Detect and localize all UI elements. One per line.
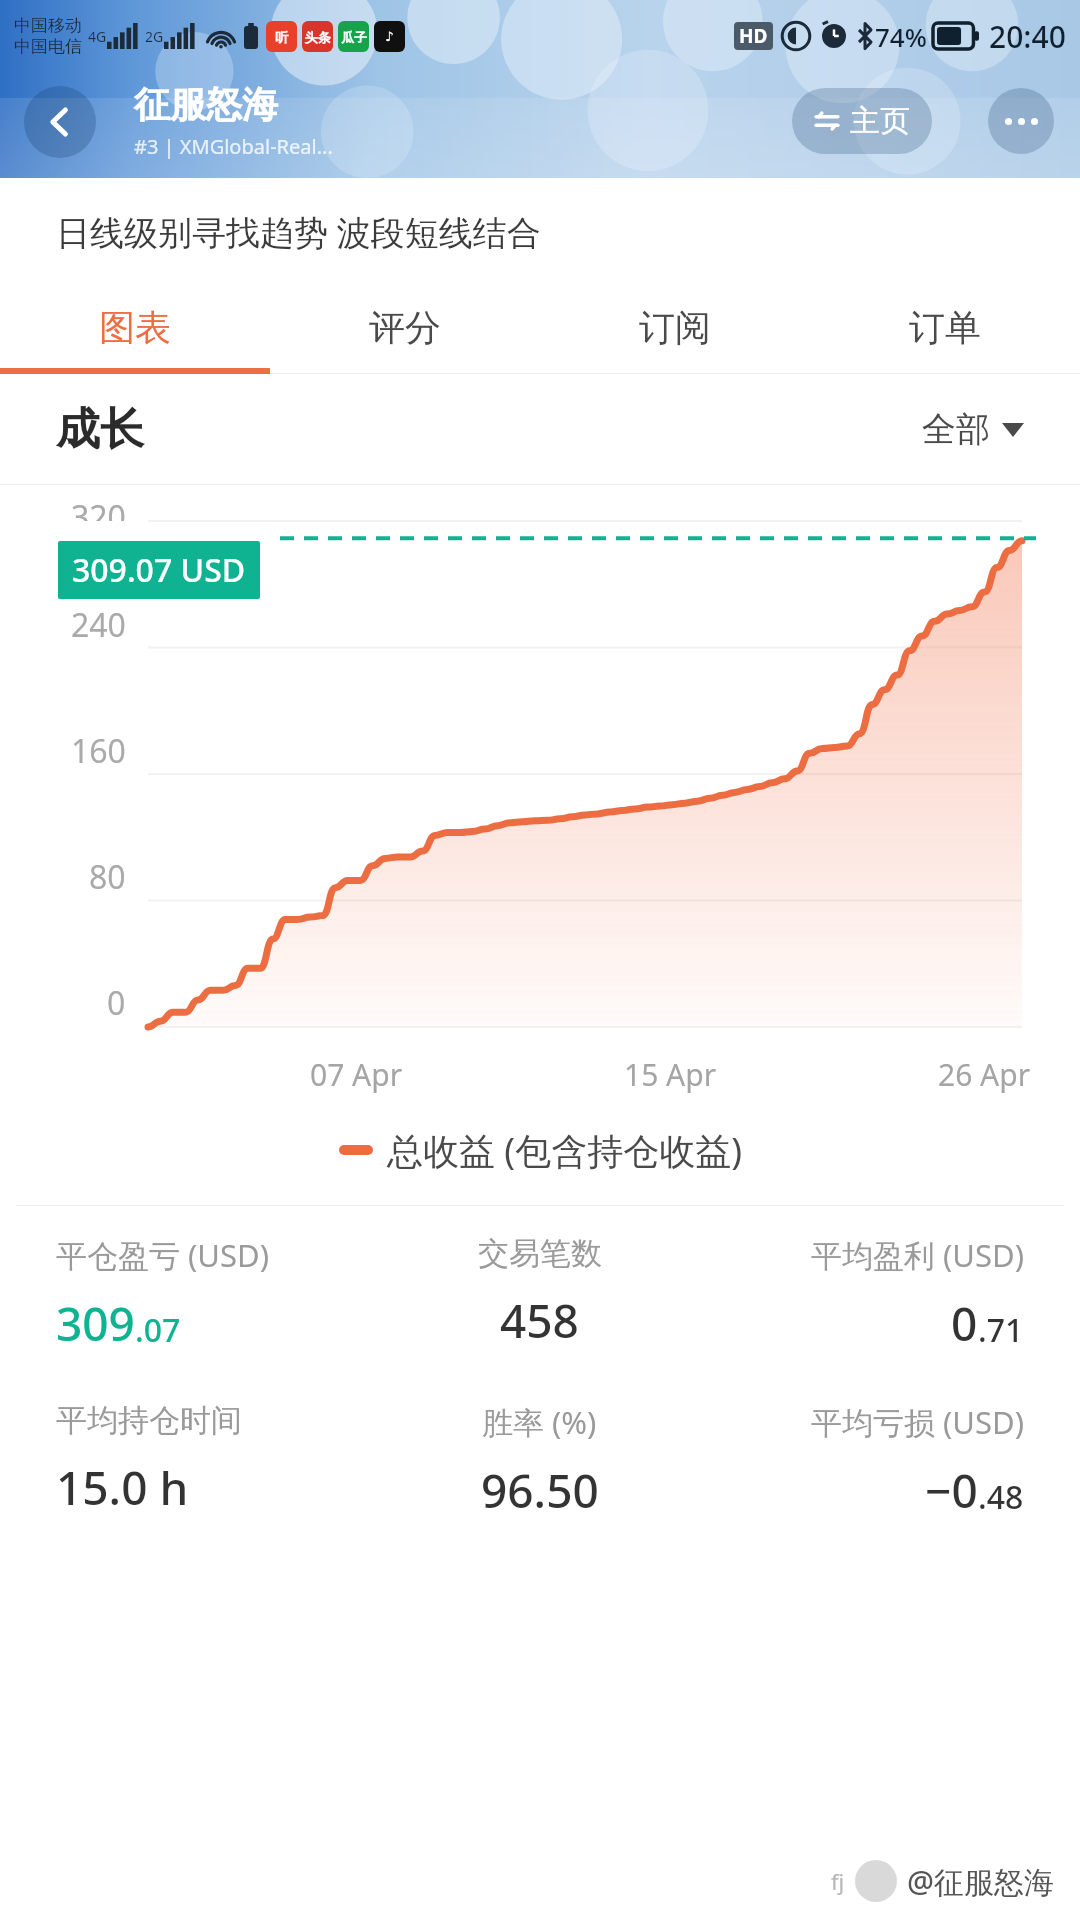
staticText: −0 <box>925 1459 978 1522</box>
staticText: 96.50 <box>481 1459 599 1522</box>
staticText: 全部 <box>922 408 990 451</box>
staticText: 订阅 <box>639 305 711 350</box>
staticText: .07 <box>135 1308 181 1352</box>
staticText: #3 | XMGlobal-Real... <box>134 133 333 160</box>
staticText: 15 Apr <box>624 1054 717 1095</box>
button[interactable]: 订单 <box>810 280 1080 374</box>
staticText: 听 <box>275 29 288 45</box>
staticText: 头条 <box>305 29 331 45</box>
staticText: 309.07 USD <box>72 548 246 592</box>
staticText: 320 <box>71 495 126 521</box>
staticText: 4G <box>88 27 107 46</box>
staticText: 平均持仓时间 <box>56 1401 242 1440</box>
staticText: .48 <box>978 1475 1024 1519</box>
staticText: 平均盈利 (USD) <box>811 1234 1024 1276</box>
staticText: 20:40 <box>989 16 1066 57</box>
staticText: 评分 <box>369 305 441 350</box>
button[interactable]: 订阅 <box>540 280 810 374</box>
staticText: 240 <box>71 603 126 647</box>
staticText: 0 <box>951 1292 978 1355</box>
staticText: 平均亏损 (USD) <box>811 1401 1024 1443</box>
button[interactable]: 主页 <box>792 88 932 154</box>
staticText: .71 <box>978 1308 1024 1352</box>
staticText: 图表 <box>99 305 171 350</box>
staticText: 74% <box>875 19 927 54</box>
staticText: 征服怒海 <box>134 82 278 127</box>
staticText: 胜率 (%) <box>482 1401 597 1443</box>
staticText: 订单 <box>909 305 981 350</box>
staticText: 主页 <box>850 102 910 140</box>
staticText: 日线级别寻找趋势 波段短线结合 <box>56 209 541 255</box>
staticText: 07 Apr <box>310 1054 403 1095</box>
button[interactable]: 更多 <box>988 88 1054 154</box>
staticText: 成长 <box>56 402 144 457</box>
staticText: 309 <box>56 1292 135 1355</box>
staticText: 0 <box>107 981 126 1025</box>
staticText: ♪ <box>385 29 394 44</box>
staticText: 15.0 h <box>56 1456 189 1519</box>
button[interactable]: 全部 <box>922 408 1024 451</box>
staticText: 中国电信 <box>14 36 82 57</box>
button[interactable]: 评分 <box>270 280 540 374</box>
staticText: 80 <box>89 855 126 899</box>
button[interactable]: 图表 <box>0 280 270 374</box>
staticText: HD <box>739 23 768 49</box>
staticText: 中国移动 <box>14 15 82 36</box>
staticText: 26 Apr <box>938 1054 1031 1095</box>
staticText: 瓜子 <box>341 29 367 45</box>
staticText: @征服怒海 <box>907 1861 1054 1902</box>
staticText: 458 <box>500 1289 579 1352</box>
staticText: 160 <box>71 729 126 773</box>
staticText: 总收益 (包含持仓收益) <box>387 1126 742 1175</box>
staticText: 平仓盈亏 (USD) <box>56 1234 269 1276</box>
staticText: 2G <box>145 27 164 46</box>
staticText: fj <box>831 1866 845 1896</box>
button[interactable]: 返回 <box>24 86 96 158</box>
staticText: 交易笔数 <box>478 1234 602 1273</box>
